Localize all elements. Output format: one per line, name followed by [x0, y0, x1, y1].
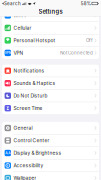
staticText: Sounds & Haptics — [13, 80, 55, 86]
staticText: Notifications — [13, 68, 44, 74]
button[interactable]: General — [2, 122, 99, 134]
button[interactable]: Cellular — [2, 22, 99, 34]
button[interactable]: Do Not Disturb — [2, 90, 99, 102]
button[interactable]: AA — [2, 147, 99, 159]
button[interactable]: Accessibility — [2, 159, 99, 172]
staticText: Do Not Disturb — [13, 93, 47, 99]
staticText: Not Connected — [60, 50, 93, 56]
staticText: Off — [86, 38, 93, 43]
staticText: VPN — [13, 50, 23, 56]
button[interactable]: Wallpaper — [2, 172, 99, 180]
staticText: Screen Time — [13, 105, 42, 111]
staticText: VPN — [5, 51, 11, 55]
button[interactable]: Wi-Fi — [2, 9, 99, 21]
staticText: 58% — [81, 1, 91, 6]
button[interactable]: Notifications — [2, 65, 99, 77]
staticText: General — [13, 125, 32, 131]
staticText: Personal Hotspot — [13, 37, 55, 43]
staticText: Control Center — [13, 138, 49, 143]
staticText: AA — [5, 151, 10, 155]
button[interactable]: Control Center — [2, 134, 99, 147]
button[interactable]: VPN — [2, 47, 99, 59]
staticText: Accessibility — [13, 163, 43, 168]
staticText: Cellular — [13, 25, 31, 31]
staticText: Settings — [38, 8, 62, 15]
button[interactable]: Back to Search — [2, 1, 21, 6]
staticText: Wallpaper — [13, 175, 36, 180]
button[interactable]: Screen Time — [2, 102, 99, 114]
staticText: Search — [4, 1, 21, 6]
button[interactable]: Sounds & Haptics — [2, 77, 99, 89]
staticText: Display & Brightness — [13, 150, 61, 156]
button[interactable]: Personal Hotspot — [2, 34, 99, 46]
staticText: Wi-Fi — [13, 12, 25, 18]
